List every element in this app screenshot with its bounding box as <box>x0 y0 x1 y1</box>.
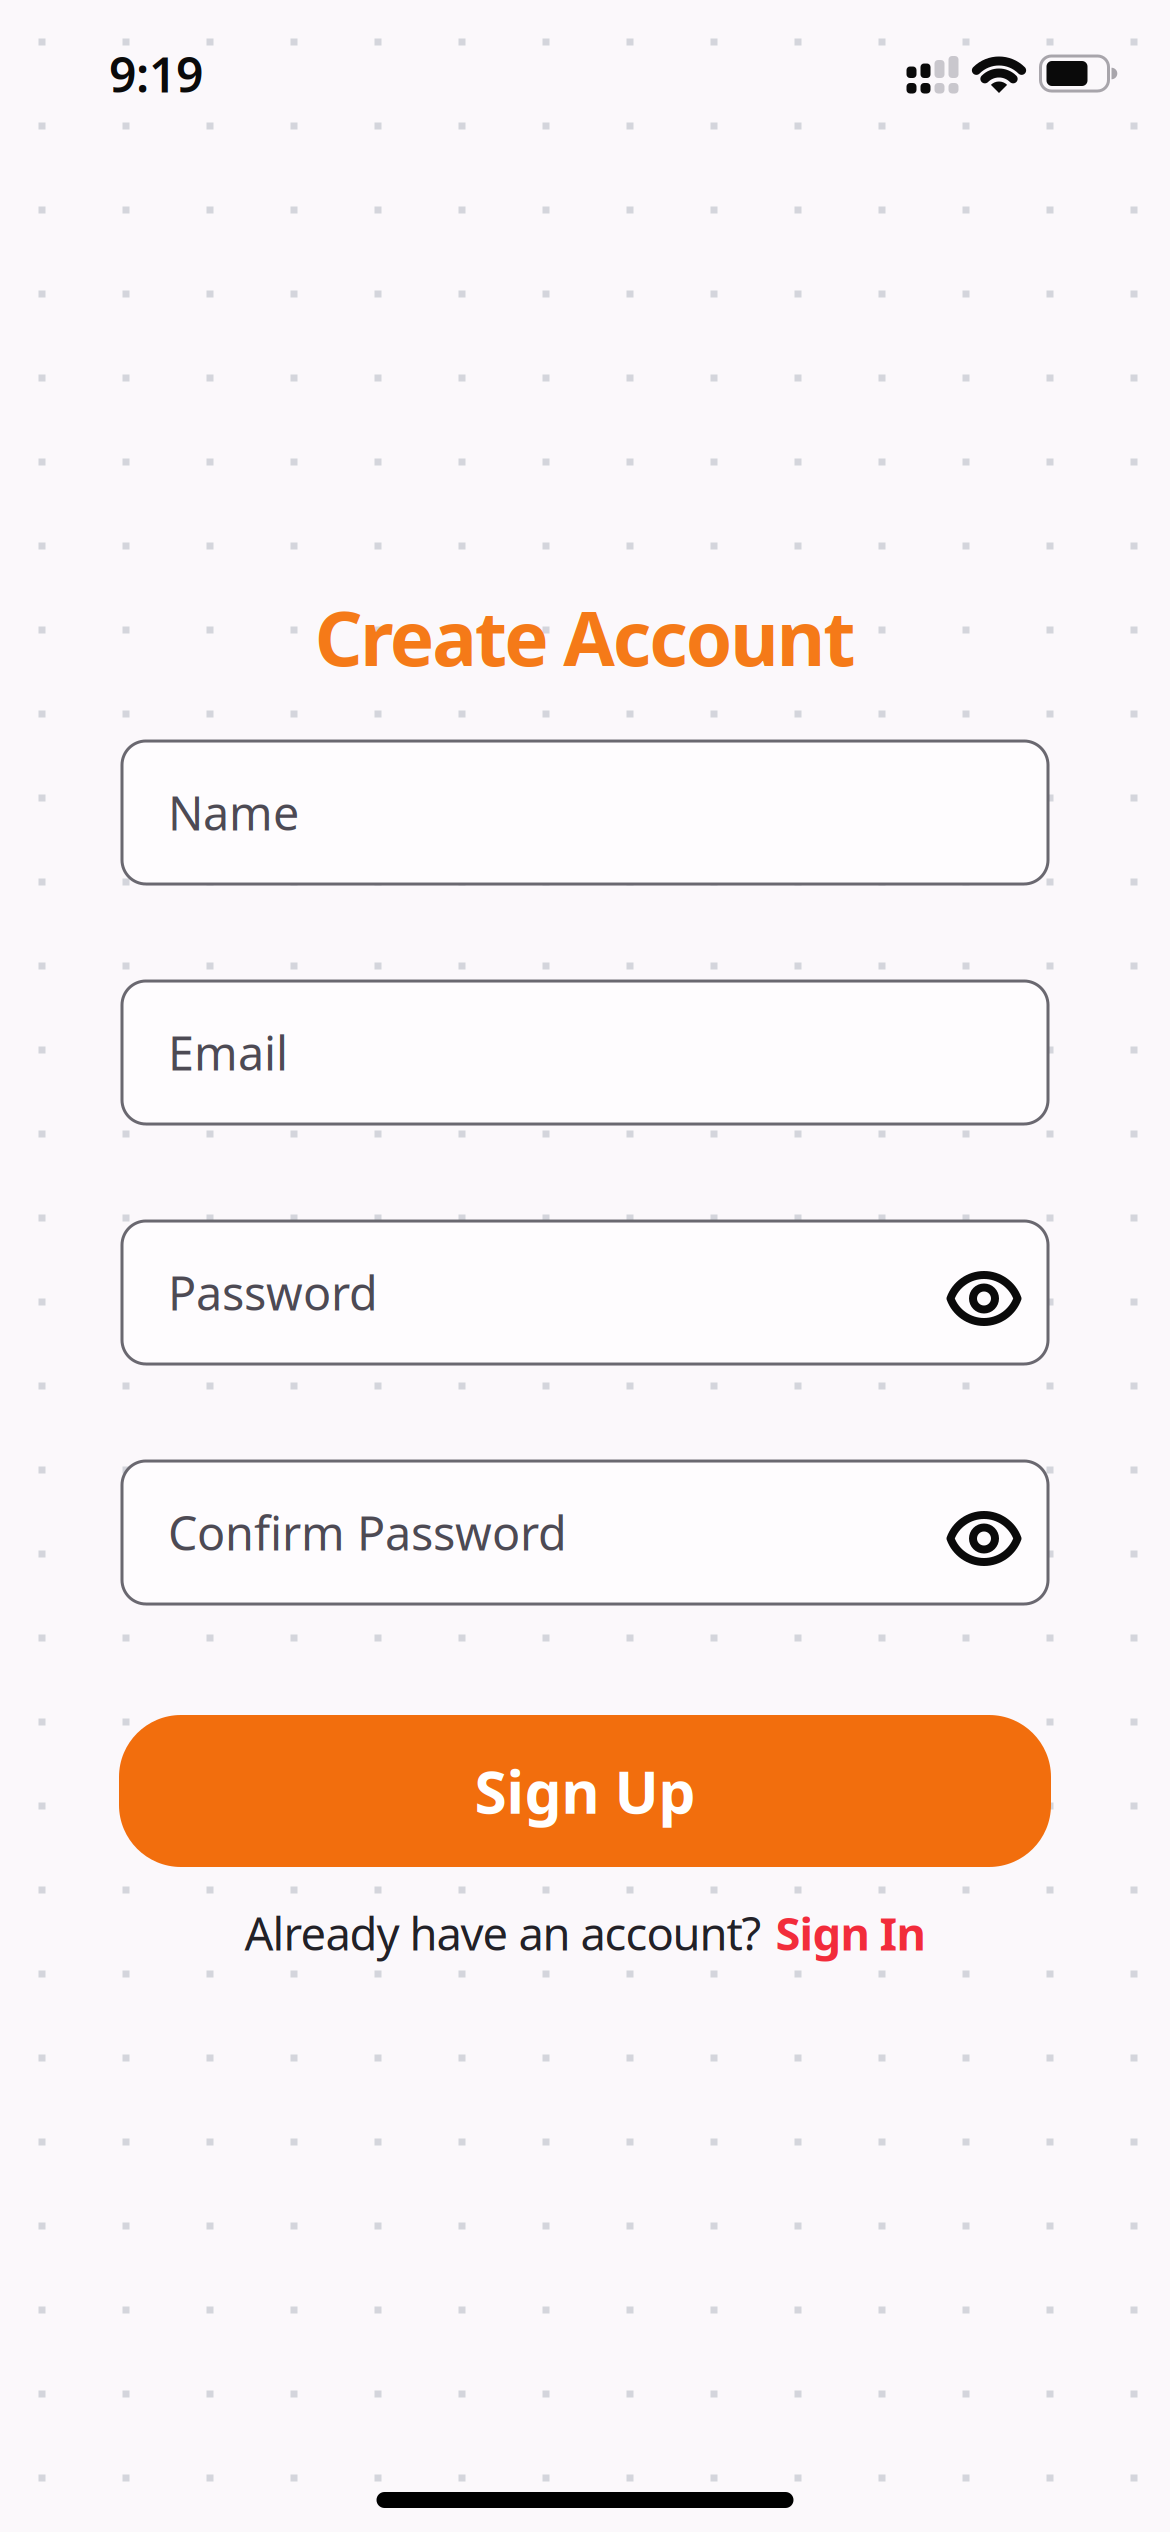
button[interactable]: Sign In <box>775 1903 925 1963</box>
staticText: Sign In <box>775 1903 925 1963</box>
staticText: 9:19 <box>109 42 203 106</box>
staticText: Confirm Password <box>168 1501 567 1563</box>
staticText: Create Account <box>315 587 855 687</box>
staticText: Already have an account? <box>244 1903 761 1963</box>
staticText: Email <box>168 1021 288 1083</box>
button[interactable]: Sign Up <box>119 1715 1051 1867</box>
staticText: Password <box>168 1261 378 1323</box>
button[interactable]: Show password <box>946 1270 1022 1326</box>
button[interactable]: Show confirm password <box>946 1510 1022 1566</box>
staticText: Sign Up <box>474 1752 695 1830</box>
staticText: Name <box>168 781 299 843</box>
